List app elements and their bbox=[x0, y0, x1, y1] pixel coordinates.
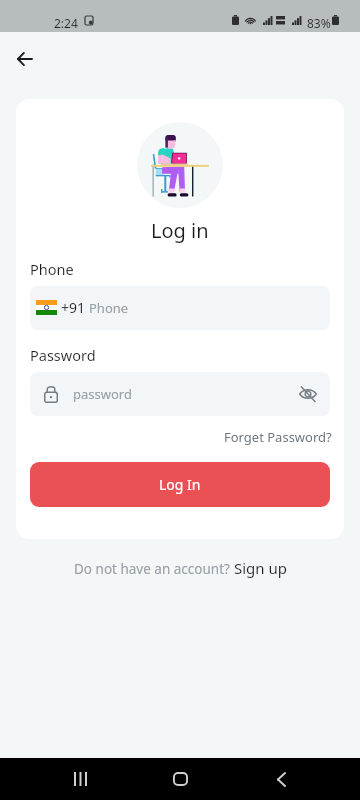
staticText: Log In bbox=[159, 475, 201, 494]
button[interactable]: Home bbox=[158, 758, 202, 800]
button[interactable]: Back bbox=[259, 758, 303, 800]
button[interactable]: Show password bbox=[297, 383, 319, 405]
button[interactable]: password bbox=[30, 372, 330, 416]
staticText: Do not have an account? bbox=[74, 560, 230, 578]
button[interactable]: Recent apps bbox=[58, 758, 102, 800]
staticText: password bbox=[73, 385, 132, 403]
button[interactable]: Forget Password? bbox=[222, 426, 334, 448]
button[interactable]: Log In bbox=[30, 462, 330, 507]
staticText: Log in bbox=[151, 217, 209, 244]
button[interactable]: Sign up bbox=[234, 558, 287, 578]
staticText: 83% bbox=[307, 15, 331, 31]
button[interactable]: +91 bbox=[30, 286, 330, 330]
staticText: 2:24 bbox=[54, 15, 78, 31]
button[interactable]: Back bbox=[6, 40, 43, 77]
staticText: Password bbox=[30, 345, 96, 365]
staticText: Phone bbox=[30, 259, 74, 279]
staticText: Sign up bbox=[234, 558, 287, 578]
staticText: +91 bbox=[61, 298, 86, 317]
staticText: Forget Password? bbox=[224, 428, 332, 446]
staticText: Phone bbox=[89, 299, 129, 317]
